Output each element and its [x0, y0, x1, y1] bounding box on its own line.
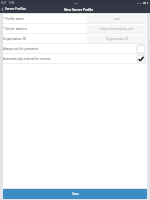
button[interactable]: Always ask for password: [3, 44, 147, 54]
staticText: https://mycompany.com: [100, 27, 134, 31]
other: Unchecked: [137, 45, 145, 53]
staticText: Organization ID: [106, 37, 128, 41]
button[interactable]: Automatically extend the session: [3, 54, 147, 64]
button[interactable]: Save: [3, 189, 147, 199]
staticText: Automatically extend the session: [3, 57, 51, 61]
staticText: * Server address: [3, 27, 28, 31]
staticText: Server Profiles: [5, 7, 26, 11]
button[interactable]: Organization ID: [3, 34, 147, 44]
staticText: Organization ID: [3, 37, 27, 41]
button[interactable]: Server Profiles: [0, 5, 28, 13]
staticText: 9:41: [1, 1, 7, 5]
button[interactable]: * Profile name: [3, 14, 147, 24]
staticText: Always ask for password: [3, 47, 39, 51]
staticText: LTE: [74, 1, 78, 4]
staticText: user: [114, 17, 120, 21]
staticText: SUN: [9, 1, 15, 5]
staticText: New Server Profile: [64, 7, 94, 11]
staticText: * Profile name: [3, 17, 24, 21]
button[interactable]: * Server address: [3, 24, 147, 34]
other: Checked: [137, 55, 145, 63]
staticText: 87%: [137, 1, 142, 4]
staticText: Save: [72, 192, 79, 196]
